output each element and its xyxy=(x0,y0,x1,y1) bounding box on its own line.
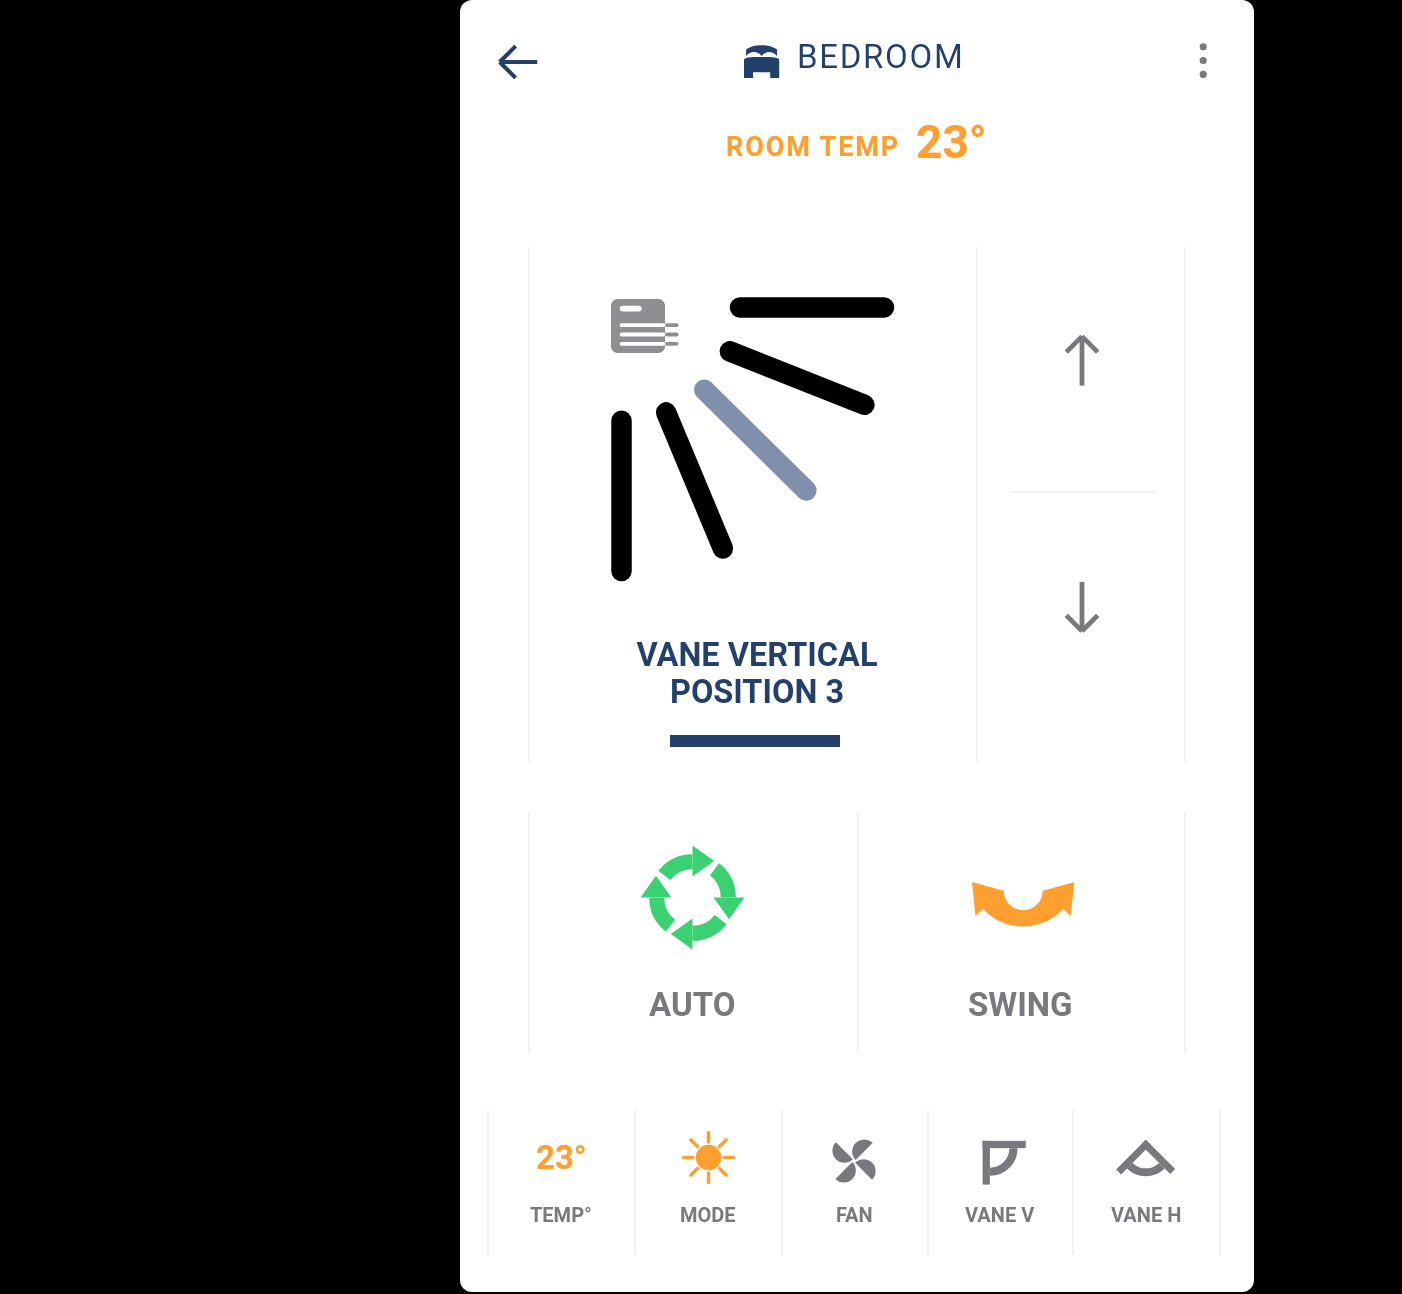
button[interactable]: VANE V xyxy=(927,1110,1072,1255)
button[interactable]: More options xyxy=(1178,34,1230,86)
staticText: AUTO xyxy=(649,985,736,1024)
staticText: VANE V xyxy=(965,1203,1035,1226)
staticText: MODE xyxy=(680,1203,736,1226)
button[interactable]: Vane up xyxy=(978,247,1186,475)
staticText: 23° xyxy=(916,115,987,169)
staticText: 23° xyxy=(536,1138,587,1177)
button[interactable]: Vane vertical position xyxy=(528,247,976,762)
button[interactable]: Vane down xyxy=(978,491,1186,722)
button[interactable]: SWING xyxy=(857,814,1184,1051)
button[interactable]: Back xyxy=(494,38,542,86)
button[interactable]: AUTO xyxy=(528,814,857,1051)
staticText: VANE H xyxy=(1111,1203,1182,1226)
staticText: TEMP° xyxy=(530,1203,592,1226)
staticText: ROOM TEMP xyxy=(726,131,901,163)
button[interactable]: 23° xyxy=(487,1110,634,1255)
button[interactable]: MODE xyxy=(634,1110,781,1255)
staticText: BEDROOM xyxy=(797,37,965,76)
button[interactable]: VANE H xyxy=(1072,1110,1219,1255)
staticText: SWING xyxy=(968,985,1073,1024)
staticText: VANE VERTICAL POSITION 3 xyxy=(636,636,878,710)
button[interactable]: FAN xyxy=(781,1110,927,1255)
staticText: FAN xyxy=(836,1203,873,1226)
